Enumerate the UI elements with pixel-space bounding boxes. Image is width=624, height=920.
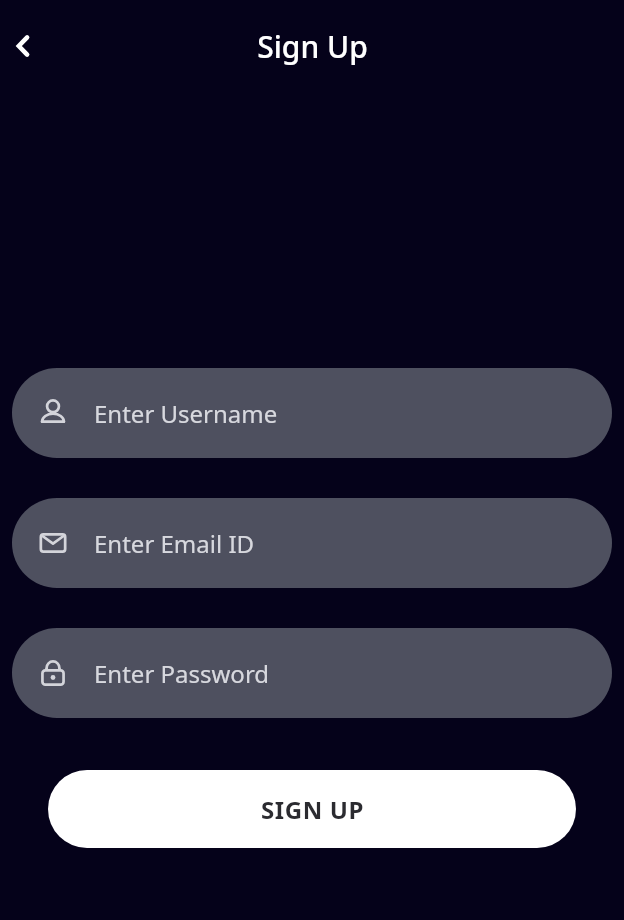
- button[interactable]: Back: [0, 22, 48, 70]
- button[interactable]: Enter Password: [12, 628, 612, 718]
- staticText: Enter Email ID: [94, 527, 255, 560]
- staticText: Sign Up: [257, 26, 368, 67]
- button[interactable]: Enter Email ID: [12, 498, 612, 588]
- staticText: Enter Password: [94, 657, 270, 690]
- staticText: Enter Username: [94, 397, 278, 430]
- button[interactable]: SIGN UP: [48, 770, 576, 848]
- button[interactable]: Enter Username: [12, 368, 612, 458]
- staticText: SIGN UP: [261, 793, 364, 826]
